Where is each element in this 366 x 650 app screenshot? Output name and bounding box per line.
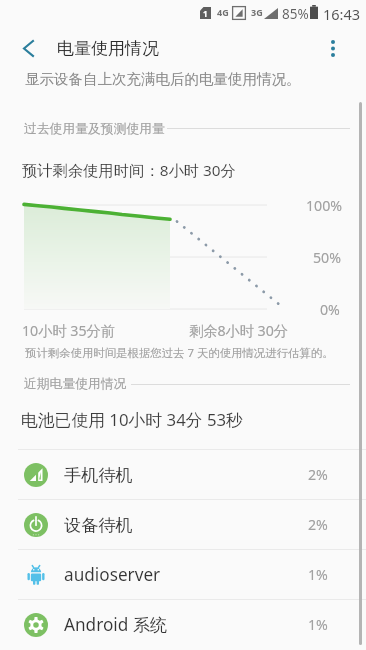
staticText: 10小时 35分前: [22, 321, 115, 340]
staticText: audioserver: [64, 563, 161, 586]
staticText: 预计剩余使用时间：8小时 30分: [22, 160, 236, 181]
staticText: 显示设备自上次充满电后的电量使用情况。: [25, 70, 301, 88]
button[interactable]: Android 系统: [0, 600, 366, 649]
staticText: 100%: [306, 196, 343, 215]
staticText: 设备待机: [64, 514, 133, 536]
staticText: 过去使用量及预测使用量: [24, 121, 165, 137]
staticText: 手机待机: [64, 464, 133, 486]
staticText: 2%: [308, 465, 328, 484]
staticText: 4G: [217, 6, 229, 18]
button[interactable]: More options: [311, 26, 355, 70]
staticText: 16:43: [323, 4, 361, 24]
staticText: 1: [203, 8, 208, 19]
button[interactable]: Back: [6, 26, 50, 70]
staticText: 0%: [320, 300, 340, 319]
staticText: Android 系统: [64, 613, 168, 636]
button[interactable]: audioserver: [0, 550, 366, 599]
staticText: 85%: [282, 5, 309, 23]
staticText: 3G: [251, 6, 263, 18]
staticText: 剩余8小时 30分: [189, 321, 288, 340]
staticText: 1%: [308, 565, 328, 584]
button[interactable]: 设备待机: [0, 500, 366, 549]
staticText: 50%: [313, 248, 342, 267]
staticText: 电量使用情况: [57, 38, 159, 59]
staticText: 2%: [308, 515, 328, 534]
staticText: 1%: [308, 615, 328, 634]
button[interactable]: 手机待机: [0, 450, 366, 499]
staticText: 预计剩余使用时间是根据您过去 7 天的使用情况进行估算的。: [25, 345, 334, 361]
staticText: 电池已使用 10小时 34分 53秒: [21, 408, 243, 431]
staticText: 近期电量使用情况: [24, 376, 127, 392]
